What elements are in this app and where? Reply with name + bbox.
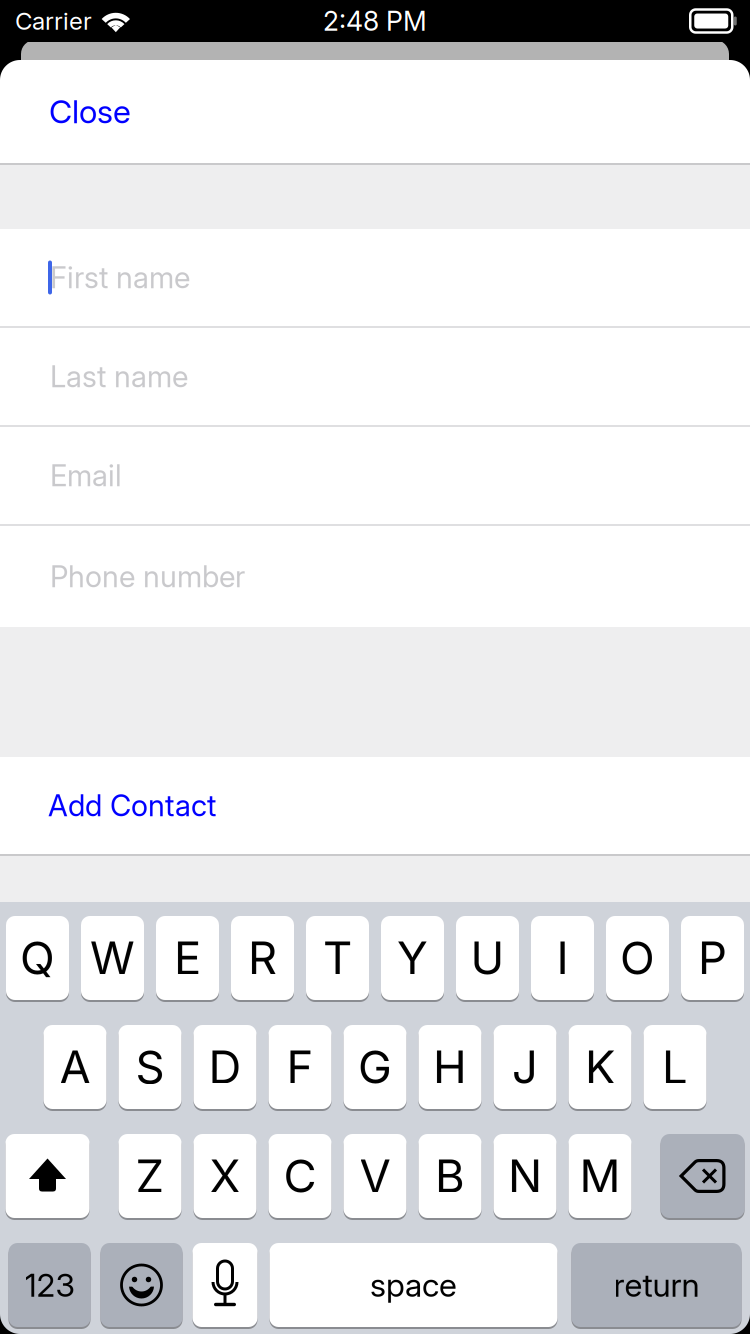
button[interactable]: D (193, 1024, 256, 1110)
button[interactable]: X (193, 1133, 256, 1219)
button[interactable]: Y (381, 915, 444, 1001)
button[interactable]: Phone number (0, 526, 750, 627)
staticText: F (286, 1040, 313, 1094)
button[interactable]: First name (0, 229, 750, 328)
button[interactable]: space (269, 1242, 557, 1328)
button[interactable]: Z (118, 1133, 181, 1219)
staticText: M (579, 1149, 620, 1203)
button[interactable]: Last name (0, 328, 750, 427)
staticText: S (135, 1040, 164, 1094)
staticText: H (433, 1040, 467, 1094)
staticText: Add Contact (48, 788, 216, 823)
button[interactable]: N (493, 1133, 556, 1219)
staticText: First name (50, 260, 190, 295)
staticText: Phone number (50, 559, 245, 594)
button[interactable]: L (643, 1024, 706, 1110)
button[interactable]: Q (6, 915, 69, 1001)
button[interactable]: Dictate (192, 1242, 257, 1328)
staticText: Email (50, 458, 122, 493)
button[interactable]: Add Contact (0, 757, 750, 854)
button[interactable]: C (268, 1133, 331, 1219)
staticText: 123 (24, 1266, 74, 1304)
button[interactable]: Close (0, 60, 750, 163)
staticText: O (620, 931, 655, 985)
button[interactable]: Delete (660, 1133, 744, 1219)
button[interactable]: V (343, 1133, 406, 1219)
staticText: Close (49, 92, 131, 131)
button[interactable]: F (268, 1024, 331, 1110)
button[interactable]: A (43, 1024, 106, 1110)
button[interactable]: M (568, 1133, 631, 1219)
staticText: P (698, 931, 727, 985)
staticText: return (613, 1266, 699, 1304)
staticText: W (90, 931, 135, 985)
button[interactable]: G (343, 1024, 406, 1110)
button[interactable]: H (418, 1024, 481, 1110)
staticText: G (358, 1040, 392, 1094)
button[interactable]: return (571, 1242, 741, 1328)
button[interactable]: B (418, 1133, 481, 1219)
staticText: A (59, 1040, 90, 1094)
button[interactable]: J (493, 1024, 556, 1110)
button[interactable]: P (681, 915, 744, 1001)
button[interactable]: R (231, 915, 294, 1001)
staticText: E (174, 931, 201, 985)
button[interactable]: O (606, 915, 669, 1001)
button[interactable]: T (306, 915, 369, 1001)
staticText: N (508, 1149, 542, 1203)
staticText: B (435, 1149, 465, 1203)
staticText: D (208, 1040, 241, 1094)
staticText: V (359, 1149, 390, 1203)
staticText: I (556, 931, 568, 985)
staticText: J (512, 1040, 538, 1094)
staticText: T (323, 931, 352, 985)
button[interactable]: U (456, 915, 519, 1001)
button[interactable]: 123 (8, 1242, 90, 1328)
staticText: Last name (50, 359, 188, 394)
staticText: Y (397, 931, 428, 985)
staticText: R (248, 931, 277, 985)
staticText: Carrier (15, 6, 92, 35)
button[interactable]: W (81, 915, 144, 1001)
staticText: space (370, 1266, 457, 1304)
staticText: U (470, 931, 504, 985)
staticText: C (283, 1149, 316, 1203)
button[interactable]: I (531, 915, 594, 1001)
button[interactable]: Shift (5, 1133, 89, 1219)
staticText: L (662, 1040, 688, 1094)
staticText: X (209, 1149, 240, 1203)
button[interactable]: Email (0, 427, 750, 526)
button[interactable]: K (568, 1024, 631, 1110)
staticText: Q (20, 931, 55, 985)
staticText: 2:48 PM (323, 5, 427, 37)
staticText: K (585, 1040, 615, 1094)
button[interactable]: Emoji keyboard (100, 1242, 182, 1328)
staticText: Z (135, 1149, 164, 1203)
button[interactable]: E (156, 915, 219, 1001)
button[interactable]: S (118, 1024, 181, 1110)
